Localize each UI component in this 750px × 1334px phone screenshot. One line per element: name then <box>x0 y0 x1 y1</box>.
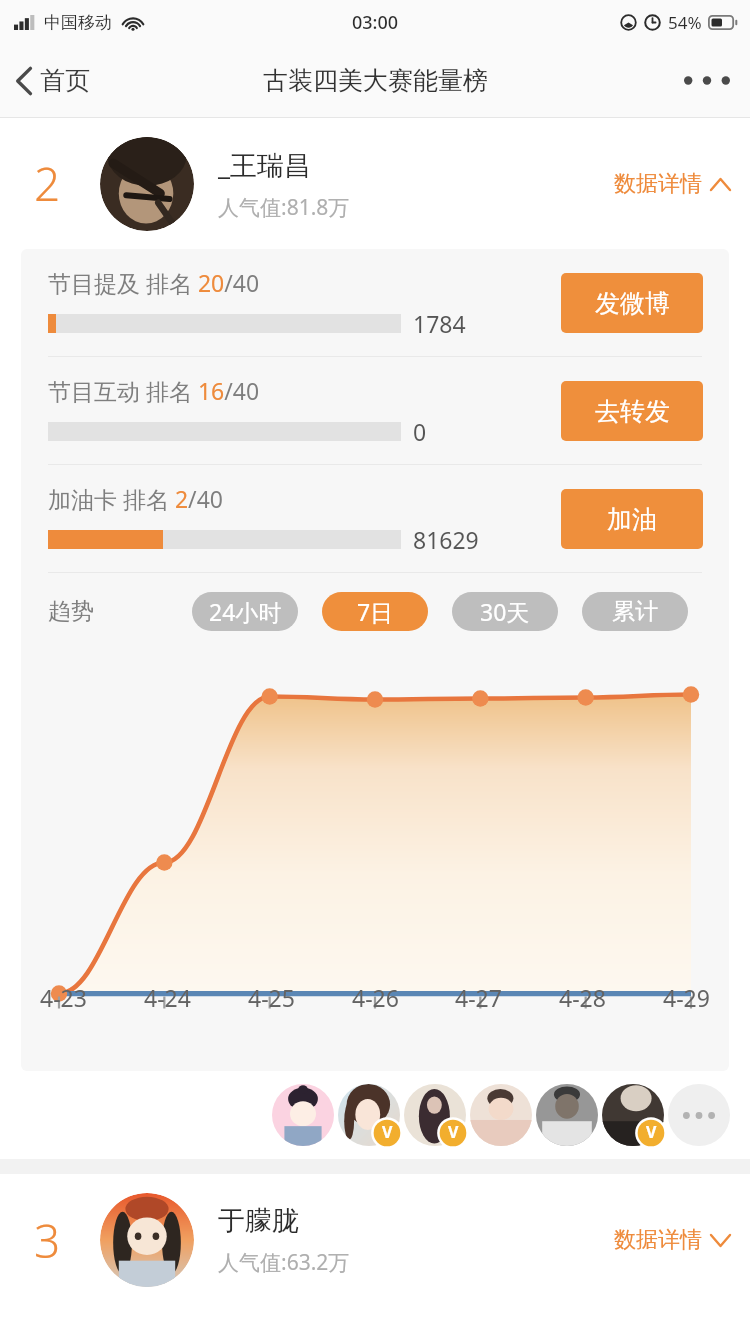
staticText: 中国移动 <box>44 12 112 33</box>
staticText: 加油 <box>607 504 657 535</box>
button[interactable]: 数据详情 <box>602 158 750 210</box>
staticText: 数据详情 <box>614 1226 702 1254</box>
staticText: 加油卡 排名 2/40 <box>48 483 223 514</box>
staticText: 人气值:63.2万 <box>218 1248 350 1277</box>
staticText: 30天 <box>480 596 530 627</box>
staticText: 节目提及 排名 20/40 <box>48 267 260 298</box>
staticText: 4-24 <box>144 982 191 1013</box>
staticText: 7日 <box>357 596 394 627</box>
button[interactable]: Fan avatar <box>404 1084 466 1146</box>
button[interactable]: Fan avatar <box>272 1084 334 1146</box>
button[interactable]: Fan avatar <box>602 1084 664 1146</box>
staticText: _王瑞昌 <box>218 146 311 183</box>
staticText: 4-25 <box>248 982 295 1013</box>
staticText: V <box>448 1121 459 1143</box>
staticText: 人气值:81.8万 <box>218 193 350 222</box>
button[interactable]: 2 <box>0 118 750 249</box>
button[interactable]: 7日 <box>322 592 428 631</box>
button[interactable]: 数据详情 <box>602 1214 750 1266</box>
staticText: 0 <box>413 416 427 447</box>
staticText: 累计 <box>612 597 658 626</box>
button[interactable]: Fan avatar <box>536 1084 598 1146</box>
staticText: 去转发 <box>595 396 670 427</box>
staticText: 4-28 <box>559 982 606 1013</box>
button[interactable]: 24小时 <box>192 592 298 631</box>
button[interactable]: More fans <box>668 1084 730 1146</box>
staticText: 2 <box>34 152 61 215</box>
button[interactable]: 3 <box>0 1174 750 1306</box>
staticText: 4-27 <box>455 982 502 1013</box>
staticText: 4-23 <box>40 982 87 1013</box>
button[interactable]: 累计 <box>582 592 688 631</box>
staticText: 54% <box>668 11 702 34</box>
staticText: 1784 <box>413 308 466 339</box>
staticText: V <box>382 1121 393 1143</box>
staticText: 3 <box>34 1209 61 1272</box>
staticText: 节目互动 排名 16/40 <box>48 375 260 406</box>
staticText: 古装四美大赛能量榜 <box>263 65 488 96</box>
staticText: 24小时 <box>209 596 282 627</box>
staticText: V <box>646 1121 657 1143</box>
staticText: 4-29 <box>663 982 710 1013</box>
button[interactable]: 首页 <box>0 55 104 106</box>
staticText: 发微博 <box>595 288 670 319</box>
button[interactable]: Fan avatar <box>338 1084 400 1146</box>
button[interactable]: More options <box>664 58 750 103</box>
button[interactable]: 发微博 <box>561 273 703 333</box>
staticText: 81629 <box>413 524 479 555</box>
button[interactable]: 30天 <box>452 592 558 631</box>
staticText: 03:00 <box>352 10 399 35</box>
button[interactable]: Fan avatar <box>470 1084 532 1146</box>
button[interactable]: 去转发 <box>561 381 703 441</box>
button[interactable]: 加油 <box>561 489 703 549</box>
staticText: 数据详情 <box>614 170 702 198</box>
staticText: 于朦胧 <box>218 1204 299 1238</box>
staticText: 4-26 <box>352 982 399 1013</box>
staticText: 趋势 <box>48 597 94 626</box>
staticText: 首页 <box>40 65 90 96</box>
